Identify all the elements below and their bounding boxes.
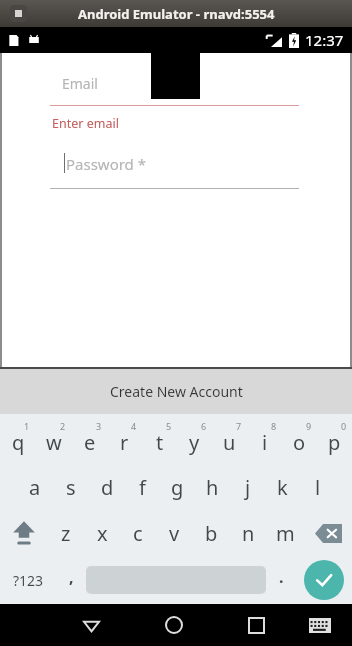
- button[interactable]: 2: [36, 414, 72, 464]
- button[interactable]: Hide keyboard: [298, 604, 342, 646]
- staticText: z: [61, 520, 71, 547]
- button[interactable]: a: [17, 464, 53, 510]
- button[interactable]: l: [300, 464, 335, 510]
- button[interactable]: x: [84, 510, 120, 556]
- staticText: 9: [306, 420, 312, 432]
- staticText: p: [328, 429, 341, 456]
- button[interactable]: Home: [132, 604, 215, 646]
- button[interactable]: 6: [177, 414, 212, 464]
- button[interactable]: 9: [282, 414, 317, 464]
- button[interactable]: Create New Account: [0, 369, 352, 414]
- staticText: l: [315, 474, 321, 501]
- staticText: d: [101, 474, 114, 501]
- staticText: 0: [341, 420, 347, 432]
- staticText: 1: [24, 420, 30, 432]
- button[interactable]: n: [230, 510, 267, 556]
- button[interactable]: Recent apps: [215, 604, 298, 646]
- button[interactable]: Email: [62, 74, 352, 93]
- button[interactable]: f: [125, 464, 160, 510]
- staticText: m: [276, 520, 295, 547]
- staticText: r: [120, 429, 129, 456]
- button[interactable]: 8: [247, 414, 282, 464]
- staticText: v: [169, 520, 180, 547]
- staticText: ,: [69, 566, 74, 588]
- staticText: x: [97, 520, 108, 547]
- button[interactable]: .: [266, 556, 296, 604]
- staticText: 8: [271, 420, 277, 432]
- staticText: u: [223, 429, 236, 456]
- button[interactable]: s: [53, 464, 89, 510]
- button[interactable]: v: [156, 510, 193, 556]
- button[interactable]: ?123: [0, 556, 56, 604]
- staticText: Password *: [66, 154, 147, 174]
- staticText: 4: [131, 420, 137, 432]
- button[interactable]: 4: [107, 414, 142, 464]
- staticText: j: [245, 474, 251, 501]
- button[interactable]: Enter: [296, 556, 352, 604]
- button[interactable]: 7: [212, 414, 247, 464]
- staticText: b: [205, 520, 218, 547]
- button[interactable]: z: [48, 510, 84, 556]
- button[interactable]: Window menu: [10, 5, 27, 22]
- staticText: f: [139, 474, 146, 501]
- staticText: o: [293, 429, 306, 456]
- button[interactable]: ,: [56, 556, 86, 604]
- staticText: s: [66, 474, 76, 501]
- staticText: 6: [201, 420, 207, 432]
- staticText: 7: [236, 420, 242, 432]
- button[interactable]: h: [195, 464, 230, 510]
- staticText: Create New Account: [110, 382, 243, 401]
- staticText: k: [277, 474, 288, 501]
- button[interactable]: b: [193, 510, 230, 556]
- button[interactable]: m: [267, 510, 304, 556]
- staticText: Email: [62, 74, 98, 93]
- button[interactable]: Password *: [50, 149, 299, 189]
- button[interactable]: 0: [317, 414, 352, 464]
- staticText: 2: [60, 420, 66, 432]
- button[interactable]: 1: [0, 414, 36, 464]
- staticText: c: [133, 520, 143, 547]
- button[interactable]: 5: [142, 414, 177, 464]
- staticText: y: [189, 429, 200, 456]
- staticText: i: [262, 429, 268, 456]
- staticText: h: [206, 474, 219, 501]
- button[interactable]: k: [265, 464, 300, 510]
- staticText: 12:37: [305, 30, 344, 50]
- staticText: .: [279, 566, 284, 588]
- staticText: w: [46, 429, 62, 456]
- button[interactable]: g: [160, 464, 195, 510]
- staticText: q: [12, 429, 25, 456]
- staticText: g: [171, 474, 184, 501]
- staticText: 3: [96, 420, 102, 432]
- button[interactable]: 3: [72, 414, 107, 464]
- staticText: e: [84, 429, 96, 456]
- button[interactable]: Shift: [0, 510, 48, 556]
- staticText: n: [242, 520, 255, 547]
- staticText: 5: [166, 420, 172, 432]
- staticText: ?123: [13, 571, 44, 590]
- button[interactable]: Backspace: [304, 510, 352, 556]
- button[interactable]: j: [230, 464, 265, 510]
- staticText: Android Emulator - rnavd:5554: [78, 5, 275, 23]
- button[interactable]: d: [89, 464, 125, 510]
- button[interactable]: c: [120, 510, 156, 556]
- staticText: t: [156, 429, 164, 456]
- staticText: a: [29, 474, 41, 501]
- staticText: Enter email: [52, 115, 119, 132]
- button[interactable]: Back: [50, 604, 132, 646]
